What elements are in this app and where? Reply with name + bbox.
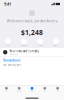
button[interactable]: Your new card is ready bbox=[0, 48, 64, 56]
staticText: Tap to activate bbox=[9, 53, 18, 55]
button[interactable]: Request bbox=[16, 38, 32, 46]
button[interactable]: Home bbox=[0, 87, 13, 92]
button[interactable]: Stats bbox=[38, 87, 51, 92]
button[interactable]: Send bbox=[0, 38, 16, 46]
staticText: No activity yet bbox=[3, 63, 21, 67]
button[interactable]: You bbox=[51, 87, 64, 92]
button[interactable]: Top up bbox=[32, 38, 48, 46]
staticText: Stats bbox=[43, 90, 46, 92]
staticText: Top up bbox=[37, 45, 42, 46]
staticText: Welcome back, Jordan Avery bbox=[6, 18, 57, 23]
staticText: More bbox=[54, 45, 58, 46]
staticText: Home bbox=[4, 90, 8, 92]
staticText: Cards bbox=[17, 90, 22, 92]
staticText: 9:41 bbox=[4, 1, 11, 7]
button[interactable]: More bbox=[48, 38, 64, 46]
staticText: Send bbox=[6, 45, 10, 46]
button[interactable]: Pay bbox=[26, 87, 38, 92]
staticText: Request bbox=[21, 45, 27, 46]
staticText: Transactions bbox=[3, 59, 20, 62]
button[interactable]: Cards bbox=[13, 87, 26, 92]
staticText: $1,248 bbox=[21, 28, 43, 37]
staticText: Your new card is ready bbox=[9, 49, 38, 53]
staticText: Pay bbox=[30, 90, 33, 92]
